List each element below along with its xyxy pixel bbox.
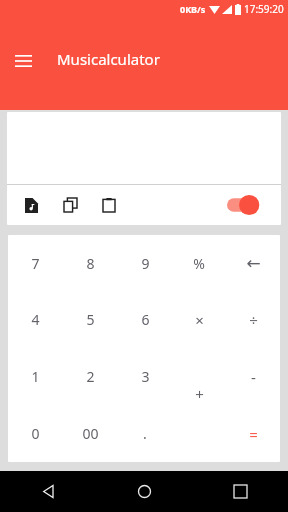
staticText: 17:59:20: [244, 2, 284, 16]
button[interactable]: ←: [226, 235, 280, 291]
button[interactable]: 5: [63, 291, 118, 348]
staticText: .: [143, 424, 147, 443]
button[interactable]: Recent apps: [192, 471, 288, 512]
staticText: %: [193, 254, 205, 273]
button[interactable]: Back: [0, 471, 96, 512]
staticText: ←: [246, 253, 261, 273]
button[interactable]: Open navigation menu: [8, 46, 38, 76]
button[interactable]: Paste: [98, 194, 120, 216]
staticText: 5: [86, 310, 95, 329]
button[interactable]: 2: [63, 348, 118, 405]
button[interactable]: 4: [8, 291, 63, 348]
button[interactable]: 3: [118, 348, 172, 405]
button[interactable]: 0: [8, 405, 63, 462]
button[interactable]: 8: [63, 235, 118, 291]
button[interactable]: -: [226, 348, 280, 405]
staticText: ÷: [249, 310, 258, 330]
button[interactable]: ÷: [226, 291, 280, 348]
button[interactable]: =: [226, 405, 280, 462]
button[interactable]: Toggle sound: [227, 192, 271, 218]
staticText: -: [251, 367, 256, 387]
staticText: 6: [141, 310, 150, 329]
staticText: 3: [141, 367, 150, 386]
staticText: 0: [31, 424, 40, 443]
button[interactable]: 00: [63, 405, 118, 462]
staticText: 7: [31, 254, 40, 273]
button[interactable]: 9: [118, 235, 172, 291]
button[interactable]: 6: [118, 291, 172, 348]
button[interactable]: Copy: [59, 194, 81, 216]
button[interactable]: .: [118, 405, 172, 462]
staticText: 8: [86, 254, 95, 273]
staticText: 00: [82, 424, 99, 443]
staticText: ×: [195, 310, 204, 330]
staticText: 0KB/s: [180, 3, 206, 15]
button[interactable]: +: [172, 348, 226, 405]
button[interactable]: ×: [172, 291, 226, 348]
button[interactable]: %: [172, 235, 226, 291]
staticText: 1: [31, 367, 40, 386]
button[interactable]: Home: [96, 471, 192, 512]
staticText: Musicalculator: [57, 49, 160, 69]
staticText: 2: [86, 367, 95, 386]
button[interactable]: 7: [8, 235, 63, 291]
staticText: 9: [141, 254, 150, 273]
staticText: +: [195, 384, 204, 404]
staticText: =: [249, 424, 258, 444]
staticText: 4: [31, 310, 40, 329]
button[interactable]: Music file: [20, 194, 42, 216]
button[interactable]: 1: [8, 348, 63, 405]
